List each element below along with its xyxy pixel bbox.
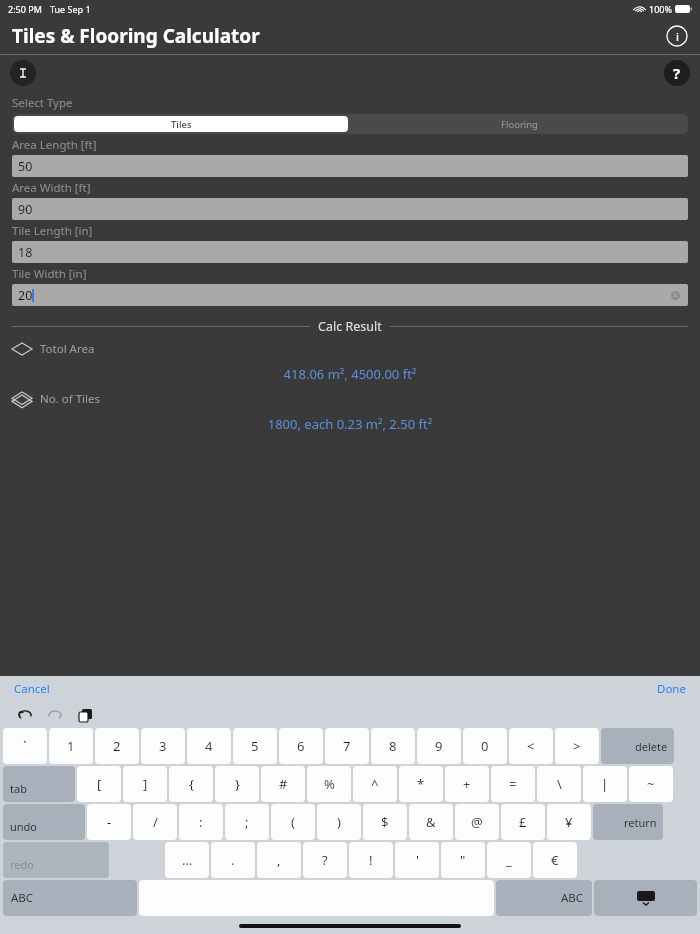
button[interactable]: + — [445, 766, 489, 802]
button[interactable]: Paste — [76, 706, 94, 724]
staticText: Tiles — [171, 118, 192, 131]
staticText: 3 — [159, 737, 167, 755]
button[interactable]: Clear — [668, 288, 682, 302]
button[interactable]: ¥ — [547, 804, 591, 840]
button[interactable]: 0 — [463, 728, 507, 764]
button[interactable]: £ — [501, 804, 545, 840]
button[interactable]: ABC — [3, 880, 137, 916]
button[interactable]: . — [211, 842, 255, 878]
button[interactable]: Done — [657, 681, 686, 697]
button[interactable]: 18 — [12, 241, 688, 263]
staticText: - — [107, 813, 112, 831]
button[interactable]: ~ — [629, 766, 673, 802]
button[interactable]: 50 — [12, 155, 688, 177]
button[interactable]: Cancel — [14, 681, 50, 697]
button[interactable]: ) — [317, 804, 361, 840]
button[interactable]: 20 — [12, 284, 688, 306]
button[interactable]: Undo — [16, 706, 34, 724]
button[interactable]: undo — [3, 804, 85, 840]
staticText: % — [324, 775, 335, 793]
staticText: Select Type — [12, 95, 73, 111]
button[interactable]: ? — [303, 842, 347, 878]
button[interactable]: > — [555, 728, 599, 764]
staticText: € — [551, 851, 559, 869]
button[interactable]: # — [261, 766, 305, 802]
staticText: , — [277, 851, 281, 869]
staticText: ¥ — [565, 813, 573, 831]
button[interactable]: ABC — [496, 880, 592, 916]
staticText: redo — [10, 857, 34, 872]
button[interactable]: * — [399, 766, 443, 802]
staticText: delete — [635, 739, 668, 754]
button[interactable]: Flooring — [350, 114, 688, 134]
button[interactable]: ' — [395, 842, 439, 878]
staticText: | — [601, 775, 609, 793]
staticText: 1800, each 0.23 m², 2.50 ft² — [0, 415, 700, 433]
button[interactable]: 9 — [417, 728, 461, 764]
button[interactable]: { — [169, 766, 213, 802]
button[interactable]: ] — [123, 766, 167, 802]
button[interactable]: redo — [3, 842, 109, 878]
button[interactable]: tab — [3, 766, 75, 802]
staticText: ; — [245, 813, 249, 831]
button[interactable]: Info — [666, 25, 688, 47]
staticText: undo — [10, 819, 38, 834]
button[interactable]: @ — [455, 804, 499, 840]
button[interactable]: ! — [349, 842, 393, 878]
staticText: 50 — [18, 158, 33, 175]
button[interactable]: return — [593, 804, 663, 840]
staticText: 2:50 PM — [8, 3, 42, 15]
button[interactable]: € — [533, 842, 577, 878]
button[interactable]: Text cursor — [10, 60, 36, 86]
staticText: £ — [519, 813, 527, 831]
button[interactable]: Hide keyboard — [594, 880, 697, 916]
button[interactable]: " — [441, 842, 485, 878]
button[interactable]: : — [179, 804, 223, 840]
button[interactable]: Totol Area — [12, 341, 700, 357]
button[interactable]: Tiles — [14, 116, 348, 132]
button[interactable]: 4 — [187, 728, 231, 764]
button[interactable]: 7 — [325, 728, 369, 764]
button[interactable]: < — [509, 728, 553, 764]
button[interactable]: 1 — [49, 728, 93, 764]
staticText: return — [624, 815, 657, 830]
button[interactable]: / — [133, 804, 177, 840]
button[interactable]: } — [215, 766, 259, 802]
button[interactable]: 2 — [95, 728, 139, 764]
button[interactable]: % — [307, 766, 351, 802]
button[interactable]: ^ — [353, 766, 397, 802]
staticText: } — [235, 775, 240, 793]
button[interactable]: ` — [3, 728, 47, 764]
button[interactable]: 5 — [233, 728, 277, 764]
button[interactable]: 90 — [12, 198, 688, 220]
button[interactable]: \ — [537, 766, 581, 802]
button[interactable]: delete — [601, 728, 674, 764]
button[interactable]: … — [165, 842, 209, 878]
button[interactable]: Redo — [46, 706, 64, 724]
button[interactable]: & — [409, 804, 453, 840]
staticText: i — [676, 29, 679, 44]
button[interactable]: [ — [77, 766, 121, 802]
button[interactable]: ( — [271, 804, 315, 840]
staticText: 6 — [297, 737, 305, 755]
button[interactable]: 3 — [141, 728, 185, 764]
button[interactable]: | — [583, 766, 627, 802]
staticText: Calc Result — [318, 318, 382, 335]
button[interactable]: $ — [363, 804, 407, 840]
staticText: 7 — [343, 737, 351, 755]
button[interactable]: - — [87, 804, 131, 840]
button[interactable]: , — [257, 842, 301, 878]
staticText: ? — [322, 851, 328, 869]
button[interactable]: 6 — [279, 728, 323, 764]
button[interactable]: ; — [225, 804, 269, 840]
button[interactable]: Help — [664, 60, 690, 86]
staticText: > — [573, 737, 581, 755]
staticText: 2 — [113, 737, 121, 755]
staticText: . — [231, 851, 235, 869]
button[interactable]: _ — [487, 842, 531, 878]
button[interactable]: = — [491, 766, 535, 802]
button[interactable]: 8 — [371, 728, 415, 764]
staticText: Area Length [ft] — [12, 137, 97, 153]
button[interactable]: No. of Tiles — [12, 391, 700, 407]
